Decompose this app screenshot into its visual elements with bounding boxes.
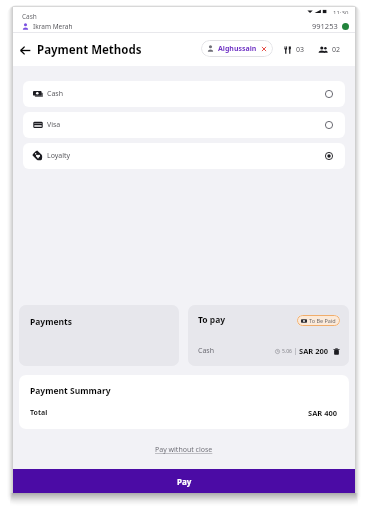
staticText: Loyalty: [47, 151, 71, 161]
staticText: Cash: [198, 346, 215, 356]
staticText: 02: [332, 45, 341, 55]
staticText: Cash: [47, 89, 64, 99]
button[interactable]: 02: [318, 45, 341, 55]
button[interactable]: Visa: [23, 112, 345, 138]
staticText: 03: [296, 45, 305, 55]
staticText: Alghussain: [218, 44, 257, 54]
staticText: Pay: [177, 476, 192, 487]
staticText: To Be Paid: [309, 317, 336, 324]
button[interactable]: Delete: [333, 348, 340, 355]
button[interactable]: Alghussain: [201, 40, 273, 57]
staticText: Payments: [30, 316, 73, 328]
button[interactable]: Pay without close: [13, 445, 355, 457]
staticText: 991253: [312, 21, 338, 31]
staticText: Visa: [47, 120, 61, 130]
staticText: Pay without close: [155, 445, 213, 455]
staticText: Payment Summary: [30, 385, 111, 397]
staticText: Payment Methods: [37, 42, 142, 58]
button[interactable]: Back: [17, 42, 33, 58]
staticText: Ikram Merah: [33, 22, 73, 31]
staticText: 5.06: [282, 348, 292, 355]
button[interactable]: Loyalty: [23, 143, 345, 169]
staticText: SAR 400: [308, 408, 338, 418]
button[interactable]: 03: [284, 45, 305, 55]
staticText: 11:30: [333, 9, 349, 14]
staticText: To pay: [198, 314, 226, 326]
staticText: Total: [30, 408, 48, 418]
button[interactable]: Payments: [19, 305, 179, 366]
button[interactable]: Cash: [23, 81, 345, 107]
button[interactable]: Pay: [13, 469, 355, 493]
staticText: SAR 200: [299, 346, 329, 356]
staticText: Cash: [22, 12, 37, 20]
